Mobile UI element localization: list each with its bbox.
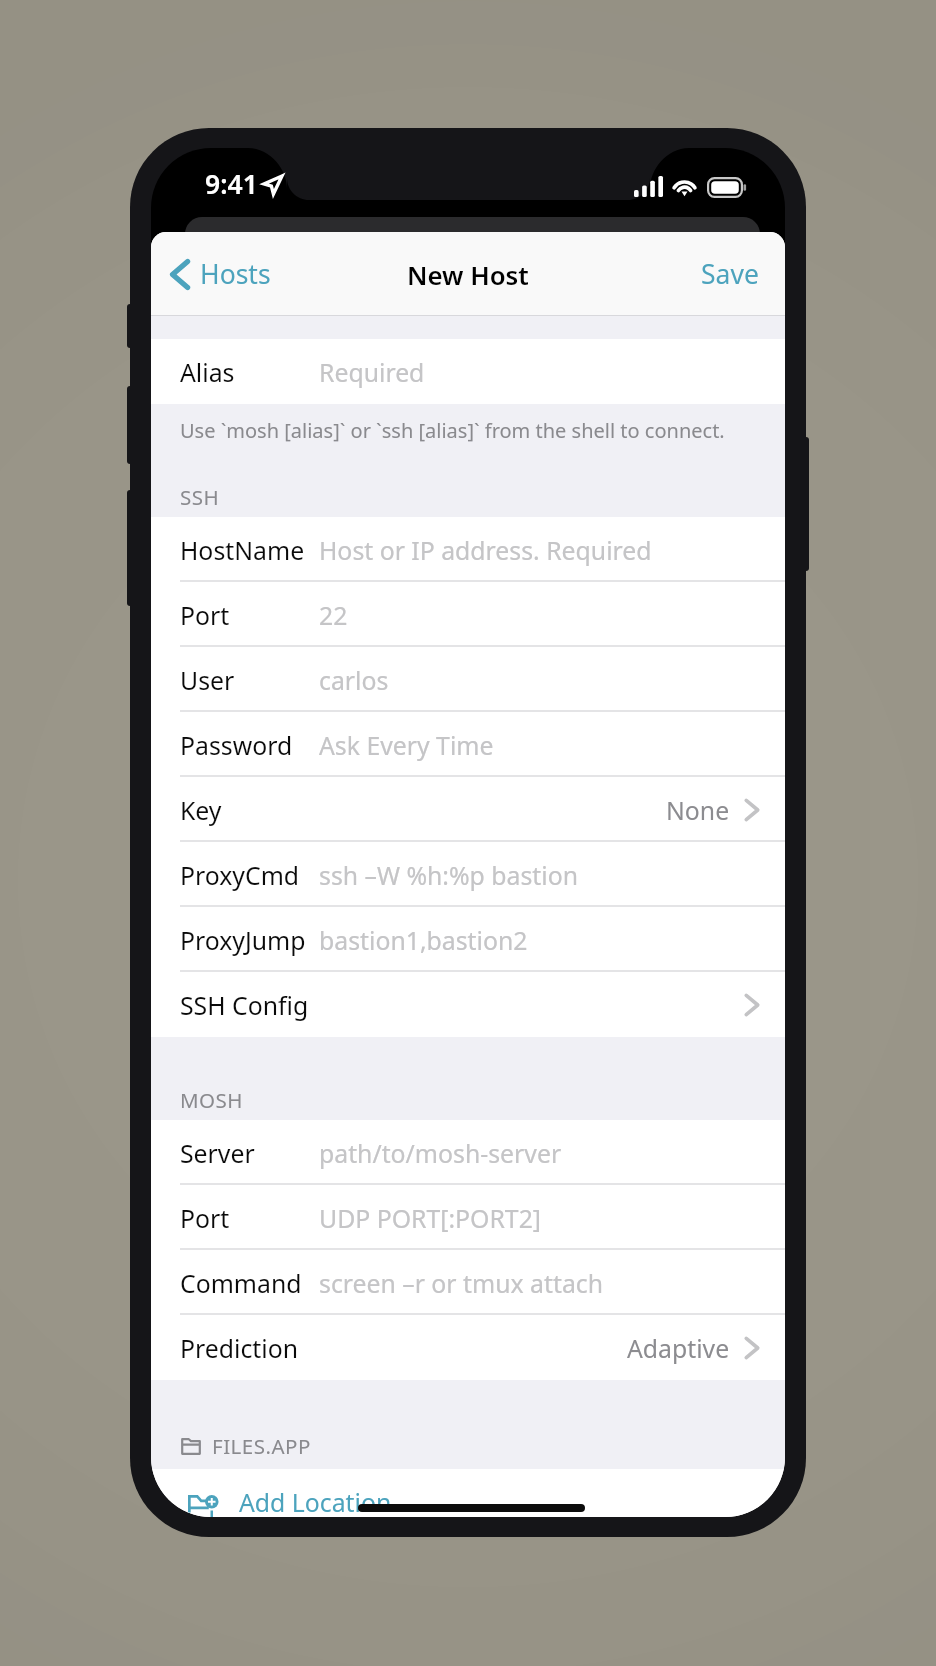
button[interactable]: Port xyxy=(151,582,785,647)
staticText: HostName xyxy=(180,533,305,567)
staticText: New Host xyxy=(407,257,529,292)
staticText: MOSH xyxy=(180,1086,244,1114)
staticText: Port xyxy=(180,1201,230,1235)
staticText: ProxyCmd xyxy=(180,858,300,892)
staticText: bastion1,bastion2 xyxy=(319,923,528,957)
button[interactable]: ProxyJump xyxy=(151,907,785,972)
button[interactable]: Save xyxy=(689,246,785,302)
staticText: ssh –W %h:%p bastion xyxy=(319,858,579,892)
staticText: Password xyxy=(180,728,293,762)
button[interactable]: Port xyxy=(151,1185,785,1250)
staticText: None xyxy=(666,793,730,827)
staticText: 22 xyxy=(319,598,348,632)
staticText: FILES.APP xyxy=(212,1432,311,1460)
staticText: Add Location xyxy=(239,1485,392,1517)
staticText: Key xyxy=(180,793,222,827)
button[interactable]: Command xyxy=(151,1250,785,1315)
button[interactable]: Prediction xyxy=(151,1315,785,1380)
staticText: Alias xyxy=(180,355,235,389)
staticText: UDP PORT[:PORT2] xyxy=(319,1201,541,1235)
staticText: Host or IP address. Required xyxy=(319,533,652,567)
button[interactable]: Password xyxy=(151,712,785,777)
staticText: Port xyxy=(180,598,230,632)
button[interactable]: User xyxy=(151,647,785,712)
staticText: screen –r or tmux attach xyxy=(319,1266,604,1300)
button[interactable]: Hosts xyxy=(151,248,281,300)
button[interactable]: HostName xyxy=(151,517,785,582)
staticText: path/to/mosh-server xyxy=(319,1136,562,1170)
staticText: SSH xyxy=(180,483,220,511)
staticText: Ask Every Time xyxy=(319,728,494,762)
button[interactable]: Add Location xyxy=(151,1469,785,1517)
button[interactable]: Key xyxy=(151,777,785,842)
staticText: Adaptive xyxy=(627,1331,730,1365)
staticText: Prediction xyxy=(180,1331,298,1365)
button[interactable]: Alias xyxy=(151,339,785,404)
staticText: Use `mosh [alias]` or `ssh [alias]` from… xyxy=(180,417,725,444)
staticText: Server xyxy=(180,1136,255,1170)
button[interactable]: Server xyxy=(151,1120,785,1185)
staticText: carlos xyxy=(319,663,389,697)
button[interactable]: SSH Config xyxy=(151,972,785,1037)
staticText: 9:41 xyxy=(205,166,258,202)
button[interactable]: ProxyCmd xyxy=(151,842,785,907)
staticText: SSH Config xyxy=(180,988,309,1022)
staticText: Command xyxy=(180,1266,302,1300)
staticText: User xyxy=(180,663,235,697)
staticText: Hosts xyxy=(200,256,271,292)
staticText: ProxyJump xyxy=(180,923,306,957)
staticText: Required xyxy=(319,355,425,389)
